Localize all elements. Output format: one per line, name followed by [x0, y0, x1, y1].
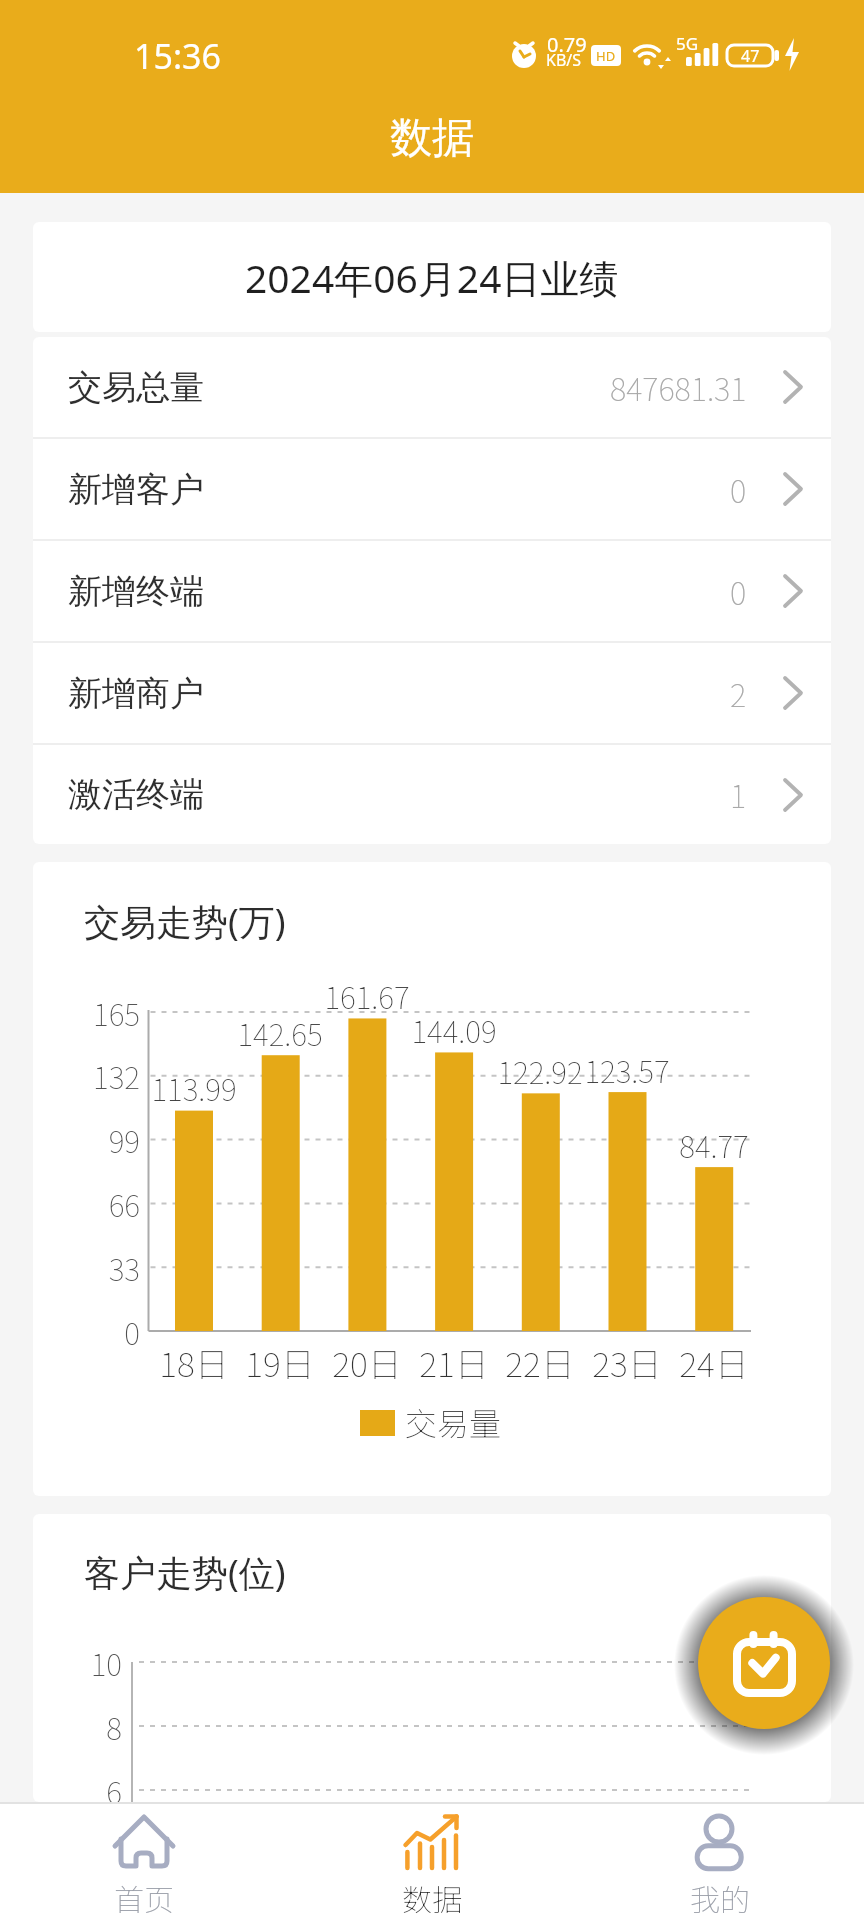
staticText: 交易总量 [68, 366, 204, 409]
button[interactable]: 新增客户 [33, 439, 831, 539]
staticText: 84.77 [679, 1123, 749, 1166]
staticText: 0 [730, 569, 747, 614]
staticText: 15:36 [134, 33, 221, 79]
button[interactable]: 首页 [0, 1802, 288, 1920]
staticText: 47 [741, 45, 760, 66]
staticText: 122.92 [497, 1049, 583, 1092]
staticText: 5G [676, 32, 699, 55]
button[interactable]: 我的 [576, 1802, 864, 1920]
staticText: 144.09 [411, 1008, 497, 1051]
staticText: 2024年06月24日业绩 [245, 251, 619, 304]
staticText: 142.65 [237, 1011, 323, 1054]
staticText: 交易走势(万) [84, 897, 286, 946]
staticText: 1 [730, 772, 747, 817]
staticText: 新增商户 [68, 672, 204, 715]
button[interactable]: 新增终端 [33, 541, 831, 641]
staticText: 2 [730, 671, 747, 716]
staticText: 33 [108, 1246, 140, 1289]
staticText: 113.99 [151, 1066, 237, 1109]
button[interactable] [698, 1597, 830, 1729]
staticText: HD [596, 47, 616, 65]
staticText: 66 [108, 1182, 140, 1225]
staticText: 数据 [390, 112, 474, 165]
staticText: 161.67 [324, 974, 410, 1017]
staticText: 165 [93, 991, 140, 1034]
button[interactable]: 激活终端 [33, 745, 831, 844]
button[interactable]: 客户走势(位) [33, 1514, 831, 1802]
staticText: KB/S [546, 49, 582, 71]
staticText: 22日 [505, 1338, 575, 1387]
button[interactable]: 数据 [288, 1802, 576, 1920]
staticText: 我的 [690, 1876, 750, 1919]
button[interactable]: 交易总量 [33, 337, 831, 437]
staticText: 123.57 [584, 1048, 670, 1091]
staticText: 132 [93, 1054, 140, 1097]
staticText: 20日 [332, 1338, 402, 1387]
staticText: 18日 [159, 1338, 229, 1387]
staticText: 24日 [679, 1338, 749, 1387]
staticText: 数据 [402, 1876, 462, 1919]
staticText: 激活终端 [68, 773, 204, 816]
staticText: 10 [90, 1641, 122, 1684]
staticText: 8 [106, 1705, 122, 1748]
staticText: 99 [108, 1118, 140, 1161]
staticText: 6 [106, 1769, 122, 1802]
button[interactable]: 交易走势(万) [33, 862, 831, 1496]
staticText: 0.79 [547, 31, 587, 58]
staticText: 21日 [419, 1338, 489, 1387]
button[interactable]: 新增商户 [33, 643, 831, 743]
staticText: 交易量 [405, 1399, 502, 1445]
staticText: 847681.31 [610, 365, 747, 410]
staticText: 新增终端 [68, 570, 204, 613]
staticText: 首页 [114, 1876, 174, 1919]
staticText: 23日 [592, 1338, 662, 1387]
staticText: 19日 [245, 1338, 315, 1387]
staticText: 0 [124, 1310, 140, 1353]
button[interactable]: 2024年06月24日业绩 [33, 222, 831, 332]
staticText: 0 [730, 467, 747, 512]
staticText: 客户走势(位) [84, 1548, 286, 1597]
staticText: 新增客户 [68, 468, 204, 511]
